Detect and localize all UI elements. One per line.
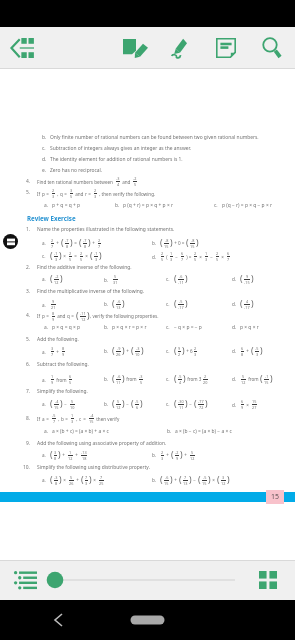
staticText: 7	[184, 475, 187, 480]
staticText: b.	[104, 348, 112, 354]
staticText: 11	[116, 380, 121, 385]
staticText: a.	[42, 349, 50, 355]
staticText: (	[160, 474, 163, 486]
staticText: )	[170, 474, 173, 486]
staticText: 15	[164, 244, 169, 249]
staticText: 4.	[26, 312, 31, 319]
staticText: ,	[57, 416, 61, 422]
staticText: 9	[52, 299, 55, 304]
staticText: -77	[198, 399, 204, 404]
staticText: 2	[178, 352, 181, 357]
staticText: (	[112, 373, 115, 385]
button[interactable]: Contents	[10, 565, 40, 595]
staticText: 2	[51, 238, 54, 243]
staticText: (	[194, 398, 197, 410]
staticText: 5	[117, 399, 120, 404]
button[interactable]: Highlight	[158, 28, 200, 68]
staticText: =	[73, 253, 79, 259]
staticText: (	[174, 298, 177, 310]
staticText: 10	[70, 405, 75, 410]
staticText: (	[50, 250, 53, 262]
staticText: ,	[75, 416, 79, 422]
staticText: 15	[54, 405, 59, 410]
staticText: 3	[51, 346, 54, 351]
button[interactable]: Grid view	[253, 565, 283, 595]
staticText: -8	[191, 238, 195, 243]
staticText: Find the additive inverse of the followi…	[37, 264, 132, 271]
staticText: +	[61, 452, 67, 458]
staticText: 18	[82, 456, 87, 461]
staticText: 1	[51, 374, 54, 379]
staticText: (	[50, 398, 53, 410]
staticText: 7	[51, 244, 54, 249]
staticText: )	[189, 474, 192, 486]
staticText: b.	[42, 134, 47, 141]
staticText: (	[179, 474, 182, 486]
button[interactable]: Annotate	[114, 28, 156, 68]
staticText: (	[251, 345, 254, 357]
staticText: 6	[136, 405, 139, 410]
staticText: 72	[199, 405, 204, 410]
staticText: b.	[104, 401, 112, 407]
staticText: +	[55, 349, 61, 355]
staticText: (	[165, 254, 169, 260]
staticText: 3	[194, 352, 197, 357]
staticText: =	[45, 313, 51, 319]
button[interactable]: Back to library	[1, 28, 43, 68]
staticText: )	[58, 449, 61, 461]
staticText: 12	[68, 456, 73, 461]
staticText: (	[198, 474, 201, 486]
staticText: 9	[51, 380, 54, 385]
staticText: 2	[98, 238, 101, 243]
staticText: p × q × r	[240, 324, 259, 331]
staticText: 8.	[26, 415, 31, 422]
staticText: 7	[51, 352, 54, 357]
staticText: + 6	[185, 348, 193, 354]
button[interactable]: Notes	[205, 28, 247, 68]
staticText: 21	[51, 305, 56, 310]
staticText: Find ten rational numbers between	[37, 179, 115, 185]
staticText: 7.	[26, 388, 31, 395]
staticText: 7	[227, 257, 230, 262]
button[interactable]: Search	[250, 28, 292, 68]
staticText: 5	[69, 380, 72, 385]
staticText: 3	[85, 481, 88, 486]
staticText: (	[131, 345, 134, 357]
staticText: d.	[152, 254, 160, 260]
staticText: 5	[194, 257, 197, 262]
staticText: p (q − r) = p × q − p × r	[222, 202, 272, 209]
staticText: 3	[70, 188, 73, 193]
button[interactable]: Page slider	[46, 565, 235, 595]
staticText: a.	[42, 240, 50, 246]
staticText: )	[227, 474, 230, 486]
staticText: )	[185, 298, 188, 310]
staticText: a × (b + c) = (a × b) + a × c	[52, 428, 109, 435]
staticText: 20	[203, 380, 208, 385]
staticText: (	[260, 373, 263, 385]
staticText: -5	[135, 399, 139, 404]
staticText: q	[60, 191, 63, 197]
staticText: )	[205, 398, 208, 410]
staticText: ×	[245, 402, 251, 408]
staticText: d.	[232, 276, 240, 282]
staticText: +	[91, 240, 97, 246]
staticText: )	[260, 345, 263, 357]
staticText: e.	[42, 167, 47, 174]
staticText: =	[87, 191, 93, 197]
staticText: -8	[165, 238, 169, 243]
staticText: )	[89, 474, 92, 486]
staticText: Add the following using associative prop…	[37, 440, 167, 447]
staticText: ×	[84, 253, 90, 259]
staticText: b.	[152, 452, 160, 458]
staticText: 26	[116, 352, 121, 357]
staticText: 4	[179, 380, 182, 385]
staticText: (	[61, 237, 64, 249]
staticText: 2	[161, 450, 164, 455]
staticText: 6	[181, 251, 184, 256]
staticText: 1	[69, 450, 72, 455]
staticText: 6	[241, 346, 244, 351]
staticText: -3	[116, 176, 120, 181]
button[interactable]: Page thumbnails	[3, 234, 18, 249]
staticText: 6.	[26, 361, 31, 368]
staticText: a.	[42, 377, 50, 383]
